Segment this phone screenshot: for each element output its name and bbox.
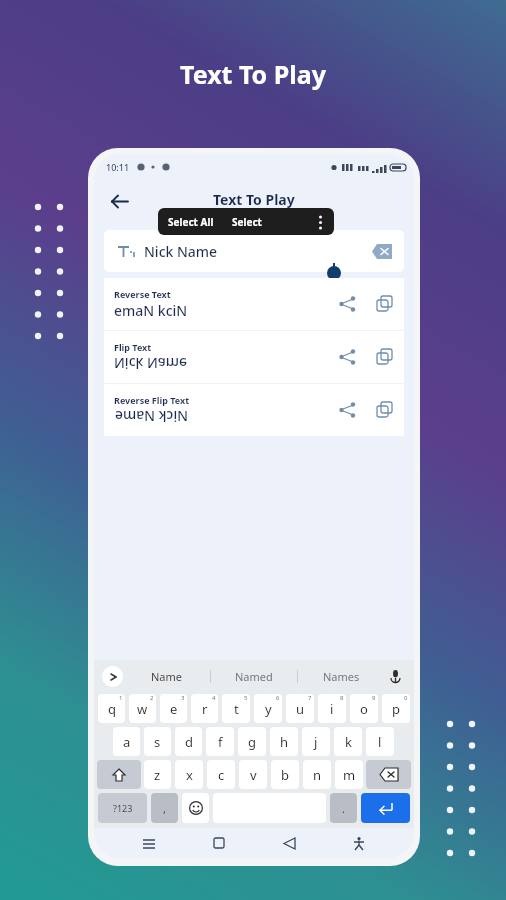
staticText: q [108, 700, 116, 718]
button[interactable]: l [366, 727, 394, 756]
staticText: c [218, 766, 225, 784]
button[interactable]: e [160, 694, 187, 723]
button[interactable]: b [271, 760, 299, 789]
button[interactable]: Copy [366, 391, 404, 429]
staticText: a [123, 733, 131, 751]
staticText: Reverse Text [114, 288, 171, 300]
staticText: 8 [340, 694, 344, 702]
button[interactable]: Back [102, 184, 136, 218]
button[interactable]: Copy [366, 338, 404, 376]
button[interactable]: r [191, 694, 218, 723]
button[interactable]: , [151, 793, 178, 823]
staticText: Name [151, 669, 183, 684]
button[interactable]: s [144, 727, 171, 756]
other: Backspace [380, 768, 398, 781]
other: Enter [378, 801, 393, 816]
button[interactable]: x [175, 760, 203, 789]
button[interactable]: o [350, 694, 378, 723]
button[interactable]: c [207, 760, 235, 789]
staticText: n [313, 766, 322, 784]
button[interactable]: Home [204, 828, 234, 858]
staticText: Reverse Flip Text [114, 394, 190, 406]
staticText: 5 [244, 694, 248, 702]
button[interactable]: Expand [102, 666, 123, 687]
staticText: Names [323, 669, 360, 684]
staticText: z [154, 766, 161, 784]
staticText: r [202, 700, 208, 718]
staticText: m [343, 766, 356, 784]
button[interactable]: w [129, 694, 156, 723]
button[interactable]: . [330, 793, 357, 823]
button[interactable]: Name [123, 660, 210, 692]
button[interactable]: Accessibility [344, 828, 374, 858]
button[interactable]: Select [232, 215, 262, 229]
button[interactable]: ?123 [98, 793, 147, 823]
button[interactable]: Share [328, 285, 366, 323]
staticText: Nick Name [114, 354, 188, 373]
staticText: y [265, 700, 272, 718]
button[interactable]: y [254, 694, 282, 723]
staticText: v [250, 766, 257, 784]
button[interactable]: Recents [134, 828, 164, 858]
button[interactable]: More options [306, 208, 334, 235]
button[interactable]: p [382, 694, 410, 723]
button[interactable]: Shift [97, 760, 141, 789]
button[interactable]: k [334, 727, 362, 756]
staticText: 6 [276, 694, 280, 702]
staticText: Select [232, 215, 262, 229]
staticText: Text To Play [213, 190, 295, 209]
staticText: k [345, 733, 352, 751]
button[interactable]: Copy [366, 285, 404, 323]
button[interactable]: n [303, 760, 331, 789]
staticText: 7 [308, 694, 312, 702]
staticText: Text To Play [180, 57, 326, 91]
button[interactable]: Emoji [182, 793, 209, 823]
staticText: g [248, 733, 256, 751]
staticText: Nick Name [144, 242, 218, 261]
button[interactable]: Voice input [384, 665, 406, 687]
button[interactable]: d [175, 727, 202, 756]
other: Emoji [189, 801, 203, 815]
button[interactable]: Reverse Flip Text [104, 384, 404, 436]
button[interactable]: t [222, 694, 250, 723]
button[interactable]: Clear [360, 230, 404, 272]
button[interactable]: Reverse Text [104, 278, 404, 330]
button[interactable]: Select All [168, 215, 214, 229]
staticText: b [281, 766, 289, 784]
button[interactable]: a [113, 727, 140, 756]
button[interactable]: Enter [361, 793, 410, 823]
button[interactable]: z [144, 760, 171, 789]
staticText: p [392, 700, 400, 718]
staticText: o [360, 700, 368, 718]
button[interactable]: Share [328, 338, 366, 376]
button[interactable]: Nick Name [104, 230, 404, 272]
button[interactable]: g [238, 727, 266, 756]
button[interactable]: v [239, 760, 267, 789]
button[interactable]: f [206, 727, 234, 756]
button[interactable]: Flip Text [104, 331, 404, 383]
button[interactable]: Share [328, 391, 366, 429]
button[interactable]: Names [298, 660, 384, 692]
button[interactable]: Back [274, 828, 304, 858]
button[interactable]: Backspace [366, 760, 411, 789]
button[interactable]: m [335, 760, 363, 789]
staticText: 10:11 [106, 161, 130, 173]
staticText: emaN kciN [114, 301, 188, 320]
button[interactable]: h [270, 727, 298, 756]
staticText: f [218, 733, 223, 751]
staticText: ?123 [113, 802, 133, 814]
button[interactable]: i [318, 694, 346, 723]
staticText: , [163, 801, 166, 816]
staticText: e [170, 700, 178, 718]
staticText: l [378, 733, 382, 751]
button[interactable]: j [302, 727, 330, 756]
staticText: d [185, 733, 193, 751]
staticText: w [137, 700, 148, 718]
button[interactable]: Named [211, 660, 297, 692]
staticText: Flip Text [114, 341, 152, 353]
staticText: 3 [181, 694, 185, 702]
staticText: u [296, 700, 305, 718]
button[interactable]: u [286, 694, 314, 723]
button[interactable]: q [98, 694, 125, 723]
